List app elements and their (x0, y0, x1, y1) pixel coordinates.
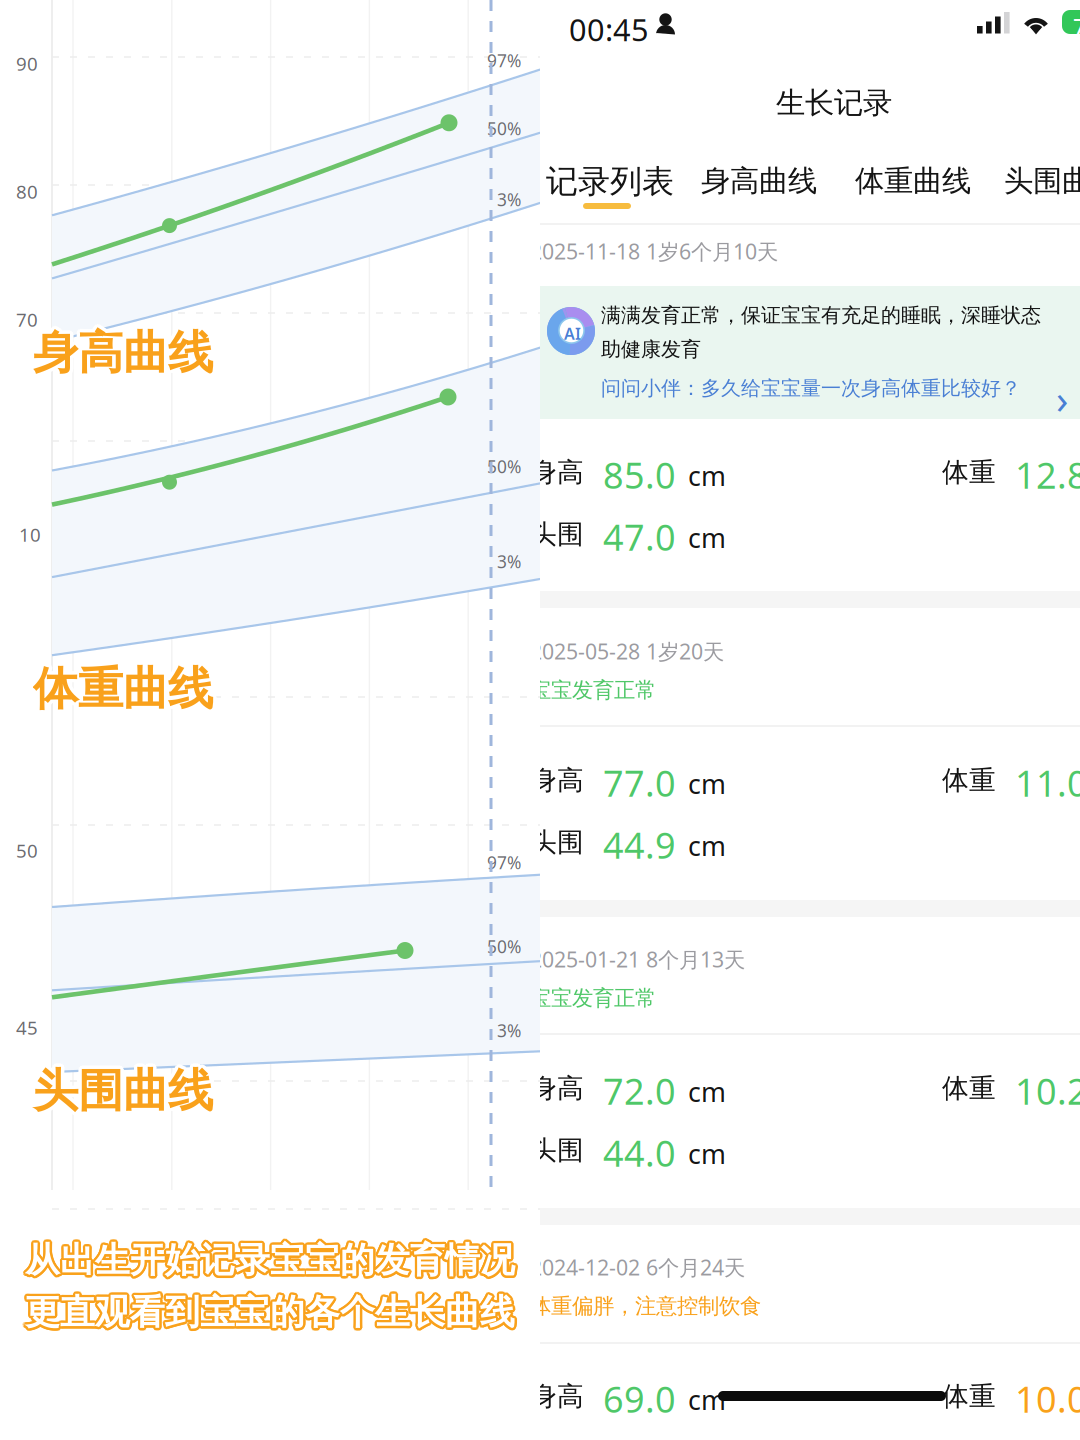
staticText: 身高曲线 (31, 322, 211, 378)
staticText: 记录列表 (546, 162, 674, 201)
staticText: 体重 (942, 764, 996, 797)
staticText: 69.0 (603, 1375, 676, 1423)
staticText: 体重曲线 (36, 663, 216, 718)
staticText: 体重曲线 (33, 661, 213, 717)
button[interactable]: 头围曲线 (1004, 163, 1080, 199)
staticText: 宝宝发育正常 (530, 677, 656, 703)
staticText: 头围曲线 (31, 1060, 211, 1116)
staticText: 12.8 (1015, 451, 1080, 499)
staticText: 更直观看到宝宝的各个生长曲线 (23, 1291, 513, 1334)
staticText: 身高曲线 (35, 328, 215, 384)
staticText: 3% (497, 188, 521, 211)
staticText: 头围 (530, 518, 584, 551)
staticText: 从出生开始记录宝宝的发育情况 (27, 1240, 517, 1283)
staticText: 更直观看到宝宝的各个生长曲线 (24, 1289, 514, 1331)
staticText: 体重曲线 (30, 659, 210, 715)
staticText: 头围曲线 (1004, 163, 1080, 199)
staticText: 50% (487, 117, 521, 140)
staticText: 体重曲线 (31, 664, 211, 720)
staticText: 从出生开始记录宝宝的发育情况 (27, 1238, 517, 1280)
staticText: 从出生开始记录宝宝的发育情况 (23, 1238, 513, 1280)
staticText: 身高 (530, 764, 584, 797)
staticText: 50% (487, 455, 521, 478)
staticText: 头围曲线 (31, 1066, 211, 1122)
staticText: 头围曲线 (36, 1065, 216, 1120)
staticText: 00:45 (569, 9, 649, 50)
staticText: 头围曲线 (30, 1063, 210, 1119)
staticText: 从出生开始记录宝宝的发育情况 (23, 1240, 513, 1283)
staticText: 体重曲线 (33, 664, 213, 720)
staticText: 头围 (530, 826, 584, 859)
staticText: cm (688, 1382, 726, 1417)
staticText: 体重 (942, 456, 996, 489)
staticText: 更直观看到宝宝的各个生长曲线 (25, 1291, 515, 1334)
staticText: 10 (19, 522, 41, 547)
staticText: 更直观看到宝宝的各个生长曲线 (24, 1293, 514, 1336)
staticText: 身高 (530, 1380, 584, 1413)
staticText: 身高曲线 (30, 323, 210, 379)
staticText: 10.0 (1015, 1375, 1080, 1423)
staticText: 2024-12-02 6个月24天 (530, 1253, 745, 1281)
staticText: 更直观看到宝宝的各个生长曲线 (26, 1289, 516, 1331)
staticText: 头围曲线 (33, 1066, 213, 1122)
staticText: 体重曲线 (33, 658, 213, 713)
staticText: cm (688, 520, 726, 555)
staticText: 10.2 (1015, 1067, 1080, 1115)
staticText: 3% (497, 550, 521, 573)
staticText: cm (688, 828, 726, 863)
staticText: 问问小伴：多久给宝宝量一次身高体重比较好？ (601, 376, 1021, 401)
staticText: 身高 (530, 456, 584, 489)
staticText: 从出生开始记录宝宝的发育情况 (26, 1241, 516, 1284)
staticText: 身高曲线 (36, 327, 216, 382)
staticText: 50 (16, 838, 38, 863)
staticText: 体重曲线 (31, 658, 211, 714)
staticText: 体重曲线 (36, 659, 216, 715)
staticText: 3% (497, 1019, 521, 1042)
staticText: cm (688, 458, 726, 493)
staticText: 身高曲线 (35, 322, 215, 378)
staticText: 体重曲线 (36, 661, 216, 717)
staticText: 从出生开始记录宝宝的发育情况 (25, 1241, 515, 1284)
staticText: › (1056, 372, 1068, 425)
staticText: 更直观看到宝宝的各个生长曲线 (27, 1291, 517, 1334)
staticText: 50% (487, 935, 521, 958)
staticText: 身高曲线 (701, 163, 817, 199)
staticText: 从出生开始记录宝宝的发育情况 (23, 1239, 513, 1282)
staticText: AI (564, 323, 581, 344)
staticText: 2025-05-28 1岁20天 (530, 637, 724, 665)
staticText: 身高 (530, 1072, 584, 1105)
staticText: 7 (1073, 12, 1080, 42)
staticText: 从出生开始记录宝宝的发育情况 (25, 1239, 515, 1282)
staticText: 85.0 (603, 451, 676, 499)
staticText: 45 (16, 1015, 38, 1040)
staticText: 更直观看到宝宝的各个生长曲线 (25, 1289, 515, 1331)
button[interactable]: 问问小伴：多久给宝宝量一次身高体重比较好？ (601, 376, 1021, 401)
staticText: 80 (16, 179, 38, 204)
staticText: 97% (487, 49, 521, 72)
staticText: 头围曲线 (33, 1060, 213, 1115)
staticText: cm (688, 766, 726, 801)
staticText: 72.0 (603, 1067, 676, 1115)
staticText: 更直观看到宝宝的各个生长曲线 (27, 1290, 517, 1332)
staticText: 90 (16, 51, 38, 76)
staticText: 体重偏胖，注意控制饮食 (530, 1293, 761, 1319)
staticText: 11.0 (1015, 759, 1080, 807)
button[interactable]: 记录列表 (546, 162, 674, 201)
staticText: 身高曲线 (33, 328, 213, 384)
button[interactable]: 体重曲线 (855, 163, 971, 199)
staticText: 头围曲线 (36, 1063, 216, 1119)
staticText: 体重曲线 (35, 664, 215, 720)
button[interactable]: 身高曲线 (701, 163, 817, 199)
staticText: 70 (16, 307, 38, 332)
staticText: 生长记录 (776, 85, 892, 121)
staticText: 2025-11-18 1岁6个月10天 (530, 237, 778, 265)
staticText: 体重 (942, 1072, 996, 1105)
staticText: 头围曲线 (35, 1066, 215, 1122)
staticText: 身高曲线 (36, 325, 216, 381)
staticText: 头围曲线 (30, 1065, 210, 1120)
staticText: 体重 (942, 1380, 996, 1413)
staticText: 更直观看到宝宝的各个生长曲线 (26, 1293, 516, 1336)
staticText: 44.0 (603, 1129, 676, 1177)
staticText: 从出生开始记录宝宝的发育情况 (25, 1237, 515, 1279)
staticText: 身高曲线 (31, 328, 211, 384)
